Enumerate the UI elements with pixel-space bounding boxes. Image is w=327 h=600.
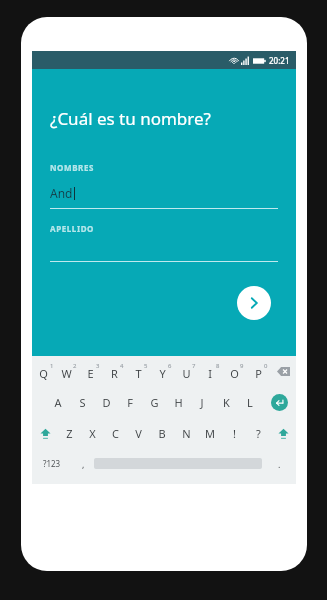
button[interactable]: X [81, 418, 104, 449]
button[interactable]: A [45, 387, 70, 418]
staticText: D [102, 395, 111, 410]
staticText: ? [256, 426, 261, 441]
button[interactable]: F [118, 387, 142, 418]
staticText: , [82, 458, 85, 470]
staticText: K [223, 395, 230, 410]
staticText: 6 [168, 362, 172, 370]
staticText: 4 [120, 362, 124, 370]
button[interactable]: I [198, 356, 222, 387]
staticText: ¿Cuál es tu nombre? [50, 107, 211, 130]
staticText: 1 [50, 362, 54, 370]
button[interactable]: Espacio [94, 457, 262, 470]
button[interactable]: B [150, 418, 174, 449]
staticText: ! [233, 426, 236, 441]
staticText: . [278, 458, 281, 470]
staticText: T [135, 366, 142, 381]
staticText: O [230, 366, 239, 381]
staticText: H [174, 395, 183, 410]
staticText: 0 [264, 362, 268, 370]
button[interactable]: ? [246, 418, 270, 449]
button[interactable]: K [214, 387, 238, 418]
staticText: A [54, 395, 62, 410]
button[interactable]: Q [32, 356, 55, 387]
staticText: And [50, 185, 73, 201]
button[interactable]: ?123 [32, 449, 72, 478]
staticText: APELLIDO [50, 223, 95, 234]
button[interactable]: H [166, 387, 190, 418]
button[interactable]: Siguiente [237, 286, 271, 320]
button[interactable]: ! [222, 418, 246, 449]
staticText: 3 [96, 362, 100, 370]
button[interactable]: , [72, 449, 94, 478]
button[interactable]: L [238, 387, 262, 418]
button[interactable]: Borrar [270, 356, 296, 387]
button[interactable]: M [198, 418, 222, 449]
staticText: G [150, 395, 159, 410]
button[interactable]: Intro [262, 387, 296, 418]
staticText: S [79, 395, 86, 410]
staticText: NOMBRES [50, 162, 95, 173]
button[interactable]: R [102, 356, 126, 387]
staticText: R [111, 366, 118, 381]
staticText: N [182, 426, 191, 441]
staticText: W [61, 366, 72, 381]
button[interactable]: Z [58, 418, 81, 449]
button[interactable]: C [104, 418, 127, 449]
staticText: M [205, 426, 215, 441]
staticText: Q [39, 366, 48, 381]
button[interactable]: Y [150, 356, 174, 387]
button[interactable]: O [222, 356, 246, 387]
staticText: X [89, 426, 96, 441]
button[interactable]: N [174, 418, 198, 449]
staticText: E [87, 366, 94, 381]
button[interactable]: T [126, 356, 150, 387]
staticText: 7 [192, 362, 196, 370]
staticText: P [255, 366, 262, 381]
staticText: U [182, 366, 191, 381]
button[interactable]: U [174, 356, 198, 387]
staticText: 2 [73, 362, 77, 370]
button[interactable]: G [142, 387, 166, 418]
button[interactable]: D [94, 387, 118, 418]
staticText: Z [66, 426, 73, 441]
button[interactable]: W [55, 356, 78, 387]
staticText: ?123 [43, 458, 61, 469]
button[interactable]: Mayúsculas [270, 418, 296, 449]
staticText: C [112, 426, 119, 441]
staticText: 8 [216, 362, 220, 370]
button[interactable]: J [190, 387, 214, 418]
staticText: F [127, 395, 133, 410]
staticText: 20:21 [269, 55, 290, 66]
button[interactable]: E [78, 356, 102, 387]
button[interactable]: S [70, 387, 94, 418]
button[interactable]: V [127, 418, 150, 449]
staticText: B [158, 426, 166, 441]
staticText: Y [159, 366, 166, 381]
staticText: L [247, 395, 253, 410]
button[interactable]: Mayúsculas [32, 418, 58, 449]
staticText: 5 [144, 362, 148, 370]
staticText: V [135, 426, 142, 441]
staticText: I [208, 366, 212, 381]
staticText: 9 [240, 362, 244, 370]
button[interactable]: . [262, 449, 296, 478]
staticText: J [200, 395, 204, 410]
button[interactable]: P [246, 356, 270, 387]
